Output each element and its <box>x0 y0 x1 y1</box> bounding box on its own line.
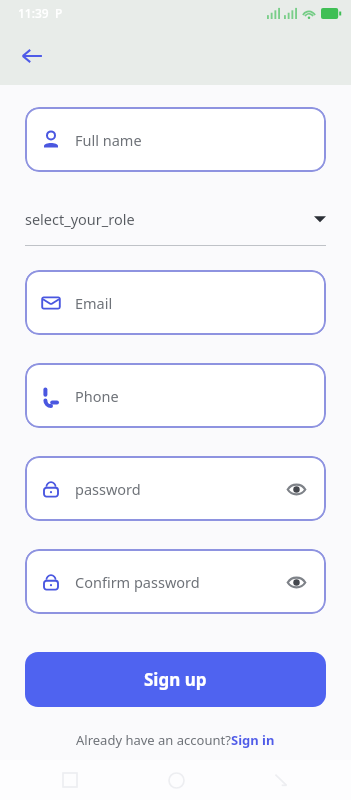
staticText: Full name <box>75 130 310 150</box>
button[interactable]: Phone <box>25 363 326 428</box>
staticText: Sign in <box>231 731 275 749</box>
button[interactable]: Recent apps <box>56 766 84 794</box>
button[interactable]: Show password <box>282 475 310 503</box>
staticText: Phone <box>75 386 310 406</box>
button[interactable]: Confirm password <box>25 549 326 614</box>
staticText: password <box>75 479 282 499</box>
staticText: Email <box>75 293 310 313</box>
button[interactable]: Email <box>25 270 326 335</box>
button[interactable]: password <box>25 456 326 521</box>
button[interactable]: Home <box>162 766 190 794</box>
button[interactable]: Show password <box>282 568 310 596</box>
staticText: select_your_role <box>25 209 314 229</box>
button[interactable]: select_your_role <box>25 201 326 246</box>
button[interactable]: Sign in <box>231 731 275 749</box>
staticText: Confirm password <box>75 572 282 592</box>
button[interactable]: Full name <box>25 107 326 172</box>
button[interactable]: Back <box>12 36 52 76</box>
staticText: Sign up <box>144 668 207 691</box>
staticText: Already have an account? <box>76 731 231 749</box>
staticText: 11:39 P <box>18 5 63 21</box>
button[interactable]: Sign up <box>25 652 326 707</box>
